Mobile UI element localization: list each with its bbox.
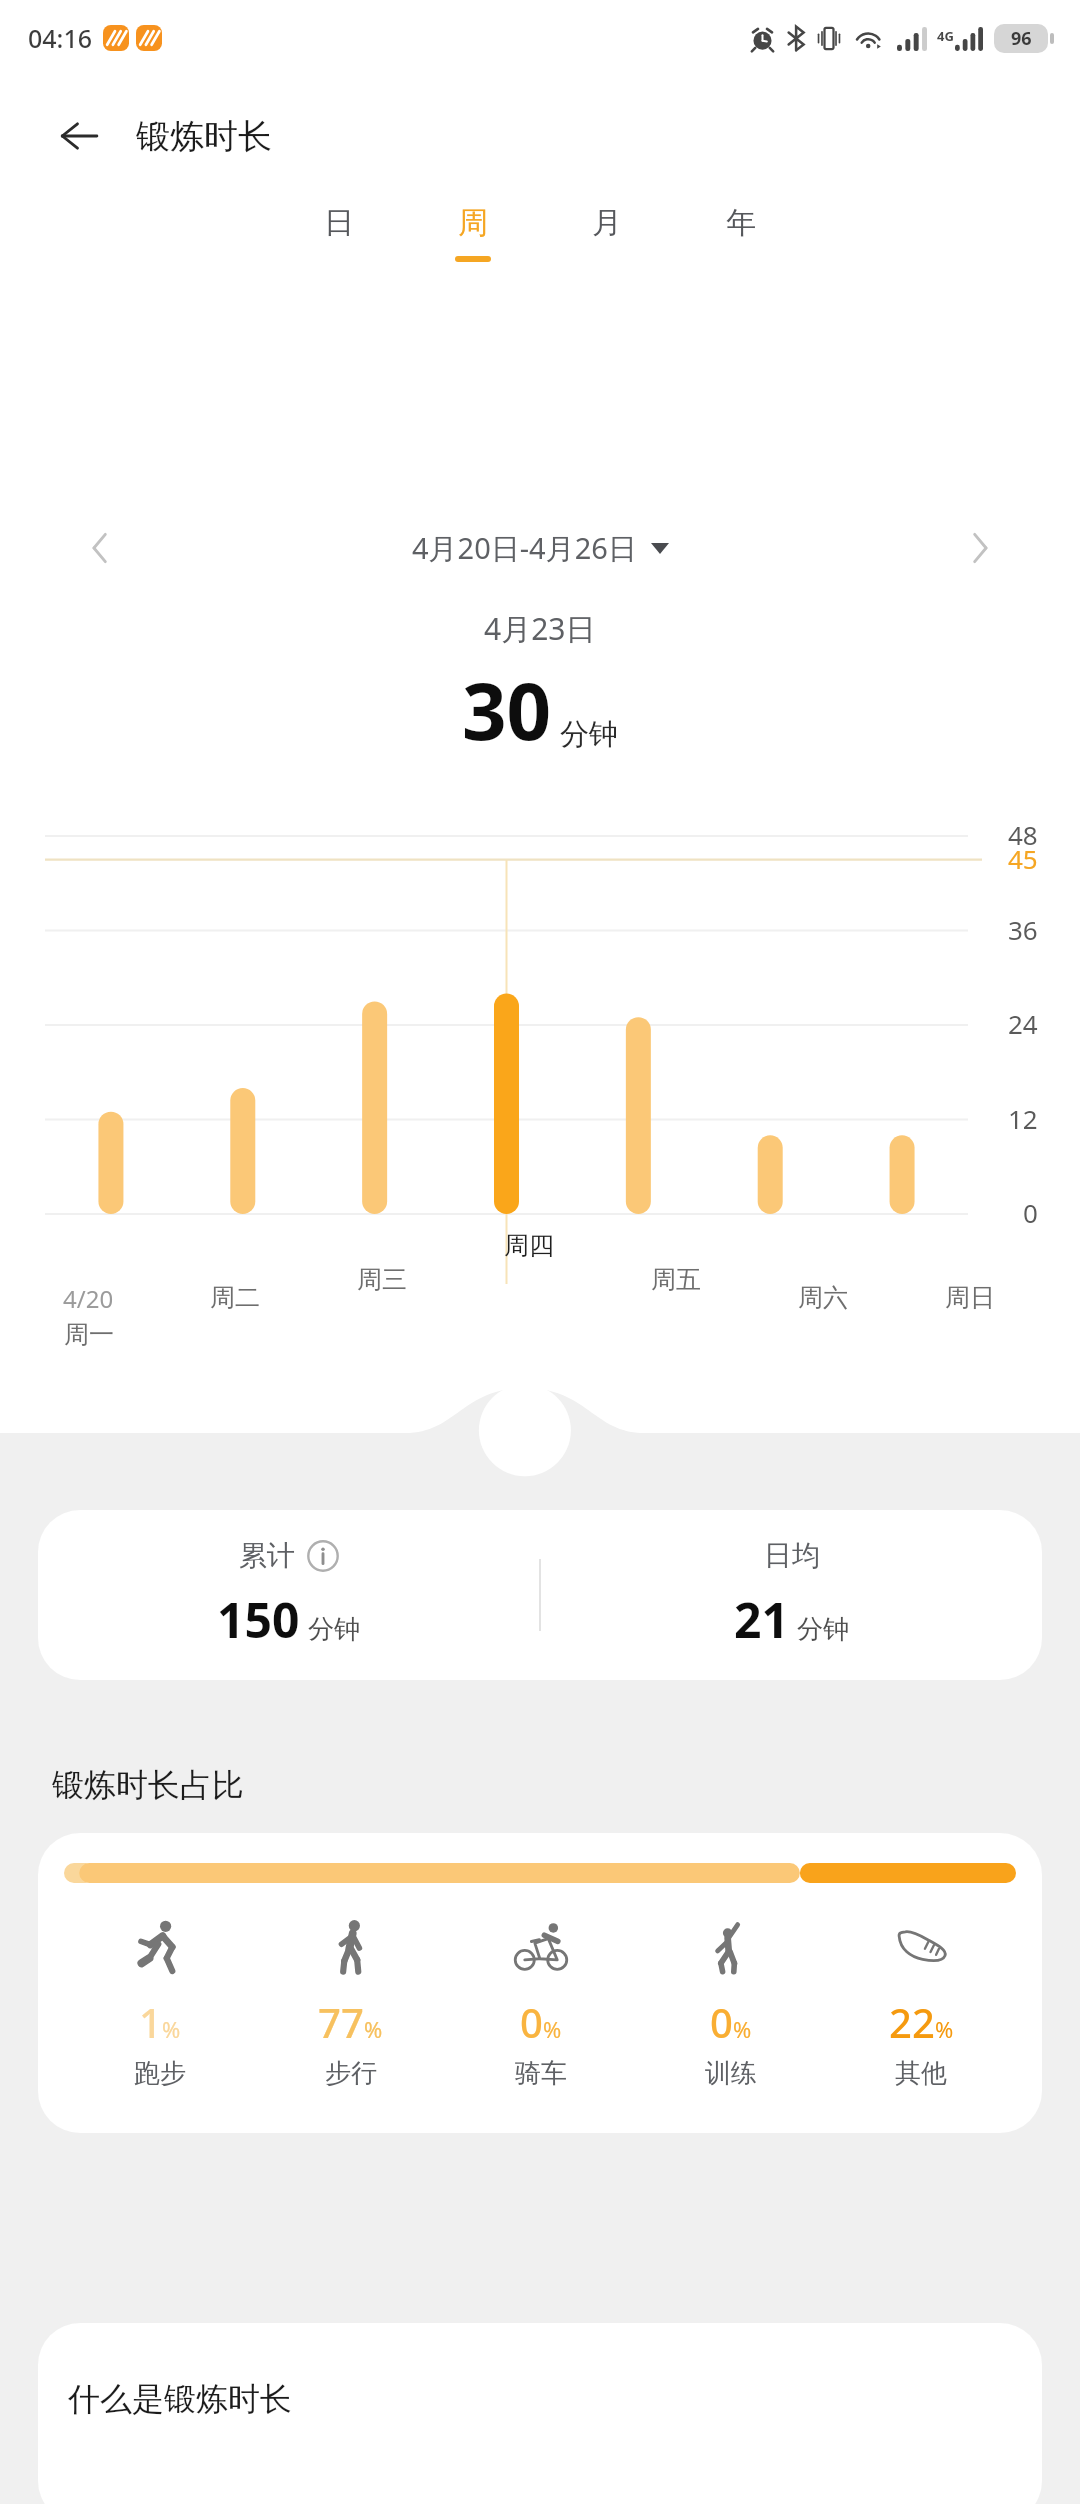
button[interactable]: 训练 xyxy=(636,1919,826,2090)
staticText: 12 xyxy=(1008,1101,1038,1136)
staticText: 96 xyxy=(1011,26,1032,51)
staticText: 年 xyxy=(726,204,756,242)
staticText: % xyxy=(935,2014,954,2044)
staticText: 36 xyxy=(1008,912,1038,947)
other: 跑步 xyxy=(132,1919,188,1975)
staticText: 周三 xyxy=(357,1264,407,1295)
staticText: 其他 xyxy=(895,2057,947,2090)
staticText: 锻炼时长 xyxy=(136,115,272,158)
staticText: 150 xyxy=(217,1587,300,1652)
staticText: 4月23日 xyxy=(484,608,596,649)
staticText: 04:16 xyxy=(28,21,93,55)
button[interactable]: 下一周 xyxy=(952,520,1008,576)
staticText: 日 xyxy=(324,204,354,242)
staticText: % xyxy=(543,2014,562,2044)
button[interactable]: 其他 xyxy=(826,1919,1016,2090)
button[interactable]: 跑步 xyxy=(64,1919,255,2090)
staticText: 月 xyxy=(592,204,622,242)
staticText: 分钟 xyxy=(797,1613,849,1646)
staticText: 周六 xyxy=(798,1282,848,1313)
other: 骑车 xyxy=(513,1919,569,1975)
staticText: 77 xyxy=(318,1995,364,2049)
staticText: 锻炼时长占比 xyxy=(52,1765,244,1805)
staticText: 周 xyxy=(458,204,488,242)
staticText: % xyxy=(733,2014,752,2044)
staticText: 日均 xyxy=(764,1538,820,1573)
staticText: 24 xyxy=(1008,1006,1038,1041)
staticText: 48 xyxy=(1008,817,1038,852)
button[interactable]: 年 xyxy=(674,196,808,270)
button[interactable]: 累计 xyxy=(38,1510,1042,1680)
staticText: % xyxy=(162,2014,181,2044)
staticText: % xyxy=(364,2014,383,2044)
staticText: 分钟 xyxy=(308,1613,360,1646)
staticText: 4G xyxy=(937,27,954,45)
staticText: 0 xyxy=(710,1995,733,2049)
staticText: 累计 xyxy=(239,1538,295,1573)
staticText: 训练 xyxy=(705,2057,757,2090)
other: 其他 xyxy=(893,1919,949,1975)
staticText: 分钟 xyxy=(560,716,618,753)
staticText: 骑车 xyxy=(515,2057,567,2090)
button[interactable]: 返回 xyxy=(48,105,110,167)
button[interactable]: 月 xyxy=(540,196,674,270)
staticText: 跑步 xyxy=(134,2057,186,2090)
staticText: 30 xyxy=(462,657,552,763)
staticText: 周五 xyxy=(651,1264,701,1295)
staticText: 步行 xyxy=(325,2057,377,2090)
staticText: 0 xyxy=(520,1995,543,2049)
staticText: 1 xyxy=(139,1995,162,2049)
staticText: 周二 xyxy=(210,1282,260,1313)
staticText: 21 xyxy=(734,1587,789,1652)
other: 训练 xyxy=(703,1919,759,1975)
button[interactable]: 步行 xyxy=(255,1919,446,2090)
staticText: 周四 xyxy=(504,1230,554,1261)
staticText: 22 xyxy=(889,1995,935,2049)
staticText: 0 xyxy=(1023,1195,1038,1230)
staticText: 周一 xyxy=(64,1319,114,1350)
staticText: 周日 xyxy=(945,1282,995,1313)
button[interactable]: 周 xyxy=(406,196,540,270)
button[interactable]: 4月20日-4月26日 xyxy=(128,528,952,568)
staticText: 4月20日-4月26日 xyxy=(412,528,637,568)
button[interactable]: 跑步 xyxy=(38,1833,1042,2133)
staticText: 45 xyxy=(1008,841,1038,876)
button[interactable]: 什么是锻炼时长 xyxy=(38,2323,1042,2504)
staticText: 什么是锻炼时长 xyxy=(68,2379,292,2419)
other: 步行 xyxy=(323,1919,379,1975)
button[interactable]: 骑车 xyxy=(446,1919,636,2090)
staticText: 4/20 xyxy=(63,1282,114,1315)
button[interactable]: 上一周 xyxy=(72,520,128,576)
button[interactable]: 日 xyxy=(272,196,406,270)
button[interactable]: 说明 xyxy=(307,1540,339,1572)
